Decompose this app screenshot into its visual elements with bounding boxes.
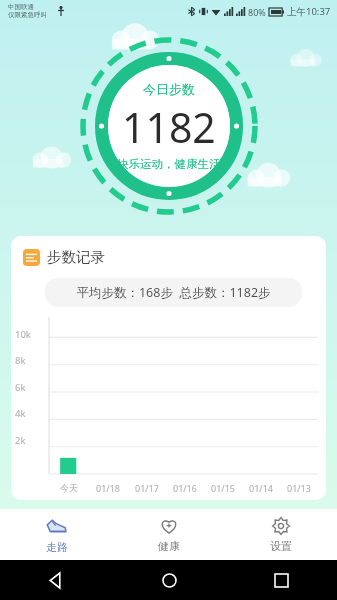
staticText: 仅限紧急呼叫 (8, 11, 47, 19)
staticText: 01/14 (249, 482, 273, 494)
staticText: 步数记录 (47, 248, 105, 266)
staticText: 2k (15, 434, 26, 447)
staticText: 01/13 (287, 482, 311, 494)
staticText: 走路 (46, 540, 68, 554)
other: 健康 (159, 516, 179, 536)
staticText: 6k (15, 381, 26, 394)
other: 设置 (271, 516, 291, 536)
button[interactable]: 健康 (113, 509, 225, 560)
button[interactable]: 走路 (0, 509, 113, 560)
staticText: 01/16 (173, 482, 197, 494)
button[interactable]: 步数记录 (11, 236, 326, 500)
staticText: 01/17 (135, 482, 159, 494)
staticText: 01/15 (211, 482, 235, 494)
staticText: 4k (15, 407, 26, 420)
staticText: 中国联通 (8, 3, 34, 11)
staticText: 8k (15, 354, 26, 367)
staticText: 01/18 (96, 482, 120, 494)
staticText: 80% (248, 6, 266, 18)
button[interactable]: 今日步数 (80, 37, 258, 215)
button[interactable]: Recent apps (225, 560, 337, 600)
staticText: 10k (15, 328, 31, 341)
staticText: 快乐运动，健康生活 (117, 157, 221, 171)
staticText: 今日步数 (143, 81, 195, 97)
staticText: 今天 (60, 482, 78, 493)
staticText: 1182 (122, 99, 216, 155)
staticText: 平均步数：168步 总步数：1182步 (76, 284, 271, 301)
button[interactable]: 设置 (225, 509, 337, 560)
other: 走路 (46, 516, 67, 537)
button[interactable]: Home (113, 560, 225, 600)
button[interactable]: Back (0, 560, 113, 600)
staticText: 健康 (158, 539, 180, 553)
staticText: 设置 (270, 539, 292, 553)
staticText: 上午10:37 (287, 5, 331, 18)
